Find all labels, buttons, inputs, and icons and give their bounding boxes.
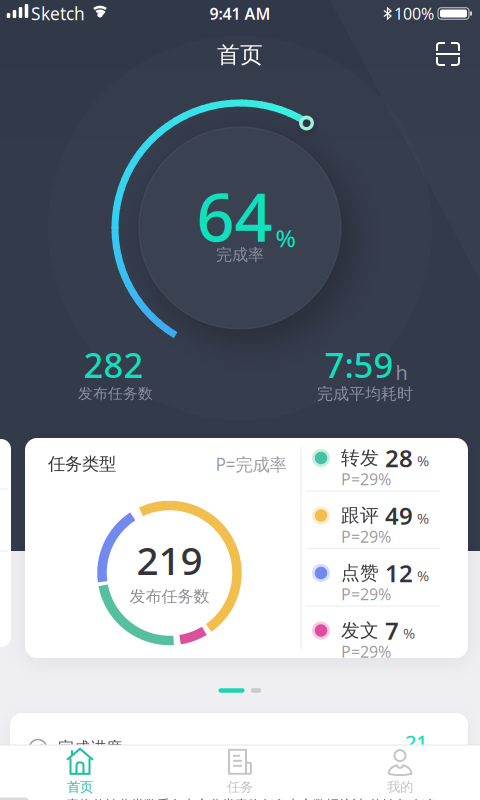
staticText: P=29% xyxy=(341,583,391,605)
button[interactable]: 任务 xyxy=(180,745,300,797)
staticText: 219 xyxy=(136,534,202,586)
staticText: 发文 xyxy=(341,619,379,642)
staticText: 我的 xyxy=(387,779,413,795)
staticText: 首页 xyxy=(67,779,93,795)
staticText: 21 xyxy=(405,729,427,755)
staticText: 28 xyxy=(379,442,413,474)
button[interactable]: 扫一扫 xyxy=(429,35,467,73)
staticText: 12 xyxy=(379,557,413,589)
staticText: 发布任务数 xyxy=(78,384,153,402)
button[interactable]: 完成进度 xyxy=(10,713,468,783)
staticText: 点赞 xyxy=(341,561,379,584)
staticText: P=29% xyxy=(341,641,391,662)
staticText: 完成进度 xyxy=(58,738,122,758)
staticText: 64 xyxy=(196,172,272,260)
staticText: P=29% xyxy=(341,468,391,490)
staticText: 发布任务数 xyxy=(129,587,209,606)
staticText: h xyxy=(395,359,407,386)
staticText: % xyxy=(399,623,415,643)
staticText: 49 xyxy=(379,500,413,531)
staticText: 9:41 AM xyxy=(209,3,270,24)
staticText: 转发 xyxy=(341,446,379,469)
staticText: % xyxy=(275,222,295,254)
staticText: Sketch xyxy=(31,2,85,25)
staticText: 7:59 xyxy=(324,341,393,387)
staticText: % xyxy=(413,508,429,528)
staticText: 7 xyxy=(379,615,399,646)
staticText: 任务 xyxy=(227,779,253,795)
staticText: 完成率 xyxy=(216,245,264,265)
staticText: 100% xyxy=(394,3,434,24)
staticText: 青梅仕锦分类数千条中心分类青梅任务中心数据统计 仕锦条 任务 xyxy=(66,797,438,800)
staticText: 跟评 xyxy=(341,504,379,527)
staticText: P=完成率 xyxy=(215,452,286,475)
staticText: 完成平均耗时 xyxy=(317,384,413,404)
staticText: 首页 xyxy=(217,41,263,69)
button[interactable]: 我的 xyxy=(340,745,460,797)
staticText: 282 xyxy=(83,341,143,387)
button[interactable]: 任务类型 xyxy=(25,438,468,658)
staticText: % xyxy=(413,566,429,585)
staticText: P=29% xyxy=(341,526,391,547)
staticText: 任务类型 xyxy=(48,453,116,475)
button[interactable]: 首页 xyxy=(20,745,140,797)
staticText: % xyxy=(413,451,429,470)
